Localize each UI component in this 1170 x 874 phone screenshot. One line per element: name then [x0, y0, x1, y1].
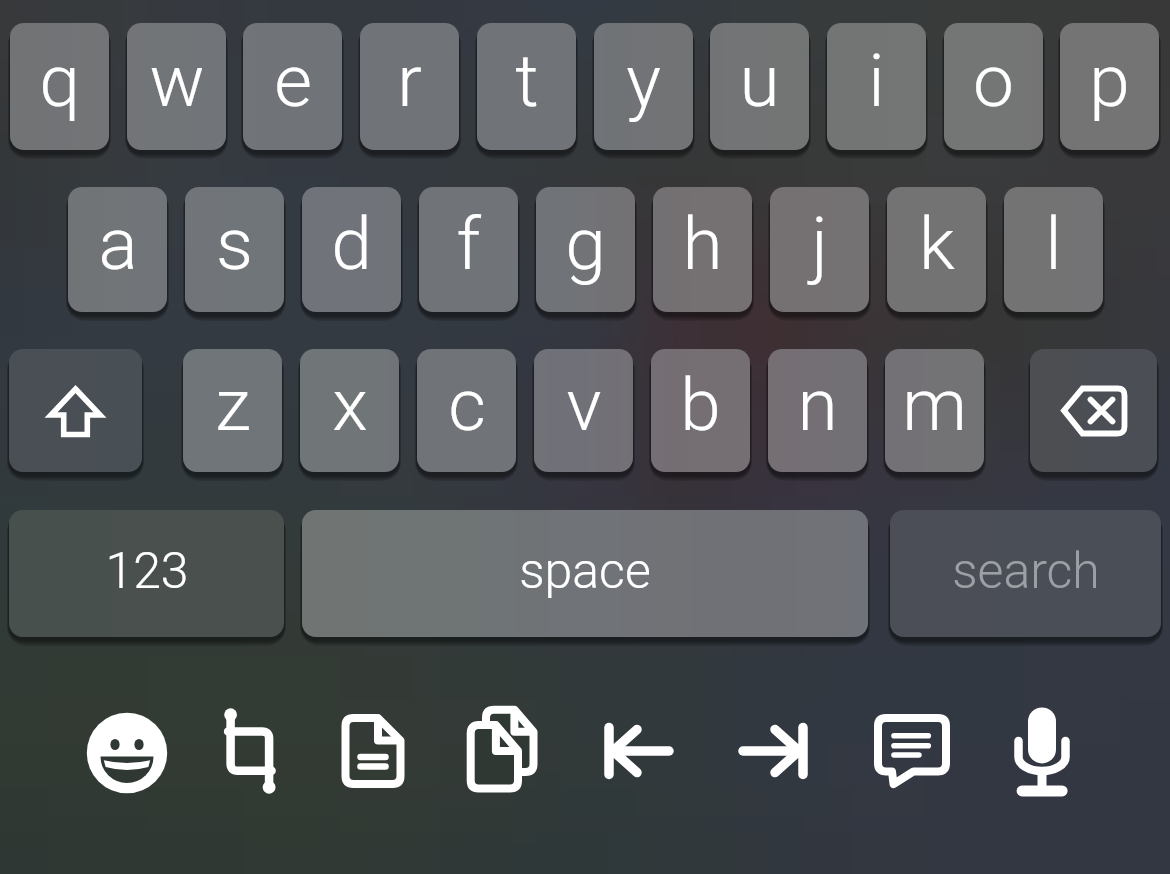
staticText: t [515, 38, 539, 124]
staticText: m [902, 362, 967, 448]
button[interactable]: u [710, 23, 809, 150]
button[interactable]: z [183, 349, 282, 472]
button[interactable]: 123 [9, 510, 284, 637]
staticText: w [149, 38, 205, 124]
staticText: z [215, 362, 251, 448]
button[interactable]: w [127, 23, 226, 150]
button[interactable]: t [477, 23, 576, 150]
staticText: n [797, 362, 838, 448]
staticText: i [868, 38, 885, 124]
button[interactable]: space [302, 510, 868, 637]
button[interactable]: r [360, 23, 459, 150]
staticText: g [565, 201, 606, 287]
button[interactable]: p [1060, 23, 1159, 150]
staticText: v [566, 362, 602, 448]
button[interactable]: a [68, 187, 167, 312]
button[interactable]: Voice input [986, 693, 1098, 805]
staticText: r [397, 38, 422, 124]
staticText: p [1089, 38, 1130, 124]
button[interactable]: Move to end [717, 695, 829, 807]
button[interactable]: x [300, 349, 399, 472]
button[interactable]: h [653, 187, 752, 312]
staticText: s [216, 201, 253, 287]
button[interactable]: l [1004, 187, 1103, 312]
staticText: e [274, 38, 312, 124]
button[interactable]: Crop [195, 695, 307, 807]
button[interactable]: c [417, 349, 516, 472]
button[interactable]: f [419, 187, 518, 312]
staticText: y [626, 38, 661, 124]
button[interactable]: Backspace [1030, 349, 1157, 472]
button[interactable]: b [651, 349, 750, 472]
button[interactable]: e [243, 23, 342, 150]
staticText: 123 [105, 542, 189, 601]
staticText: f [456, 201, 481, 287]
button[interactable]: n [768, 349, 867, 472]
button[interactable]: Copy [446, 695, 558, 807]
staticText: x [332, 362, 368, 448]
button[interactable]: Emoji [71, 697, 183, 809]
button[interactable]: y [594, 23, 693, 150]
button[interactable]: Shift [9, 349, 142, 472]
button[interactable]: q [10, 23, 109, 150]
button[interactable]: s [185, 187, 284, 312]
staticText: j [811, 201, 828, 287]
button[interactable]: Move to start [583, 695, 695, 807]
button[interactable]: d [302, 187, 401, 312]
button[interactable]: o [944, 23, 1043, 150]
staticText: b [680, 362, 721, 448]
staticText: a [98, 201, 138, 287]
staticText: u [739, 38, 780, 124]
button[interactable]: i [827, 23, 926, 150]
staticText: l [1045, 201, 1062, 287]
button[interactable]: Document [317, 696, 429, 808]
button[interactable]: g [536, 187, 635, 312]
button[interactable]: v [534, 349, 633, 472]
staticText: k [919, 201, 955, 287]
staticText: d [331, 201, 372, 287]
staticText: h [682, 201, 723, 287]
button[interactable]: j [770, 187, 869, 312]
staticText: c [448, 362, 486, 448]
button[interactable]: search [890, 510, 1161, 637]
button[interactable]: k [887, 187, 986, 312]
button[interactable]: m [885, 349, 984, 472]
button[interactable]: Messages [856, 695, 968, 807]
staticText: search [952, 542, 1100, 601]
staticText: q [39, 38, 80, 124]
staticText: o [973, 38, 1014, 124]
staticText: space [519, 542, 651, 601]
